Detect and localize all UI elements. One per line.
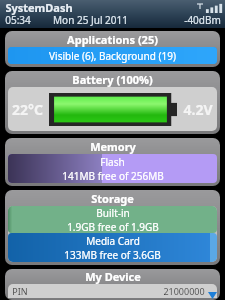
button[interactable]: Battery (100%)	[5, 71, 220, 134]
staticText: 21000000	[163, 285, 205, 297]
staticText: Storage	[91, 191, 134, 206]
staticText: Battery (100%)	[72, 72, 153, 87]
button[interactable]: 22°C	[8, 87, 217, 131]
staticText: 133MB free of 3.6GB	[64, 248, 161, 262]
staticText: Memory	[90, 139, 136, 154]
staticText: Media Card	[86, 234, 140, 248]
other: Scroll down	[208, 292, 217, 299]
staticText: 141MB free of 256MB	[62, 169, 164, 183]
staticText: My Device	[85, 269, 141, 284]
staticText: SystemDash	[5, 0, 73, 15]
button[interactable]: Visible (6), Background (19)	[8, 47, 217, 64]
staticText: -40dBm	[184, 13, 221, 27]
staticText: 05:34	[5, 13, 31, 27]
staticText: Visible (6), Background (19)	[49, 49, 176, 63]
button[interactable]: Flash	[8, 154, 217, 183]
staticText: Built-in	[96, 206, 130, 220]
staticText: 1.9GB free of 1.9GB	[67, 220, 159, 233]
button[interactable]: Applications (25)	[5, 31, 220, 67]
staticText: Mon 25 Jul 2011	[53, 13, 128, 27]
button[interactable]: My Device	[5, 269, 220, 300]
staticText: 4.2V	[183, 100, 213, 119]
staticText: Flash	[100, 155, 125, 169]
staticText: 22°C	[12, 100, 43, 119]
button[interactable]: Memory	[5, 138, 220, 186]
other: Signal strength	[195, 2, 221, 13]
button[interactable]: Built-in	[8, 206, 217, 233]
button[interactable]: Storage	[5, 190, 220, 265]
staticText: Applications (25)	[67, 32, 158, 47]
button[interactable]: Media Card	[8, 233, 217, 262]
staticText: PIN	[12, 285, 28, 297]
